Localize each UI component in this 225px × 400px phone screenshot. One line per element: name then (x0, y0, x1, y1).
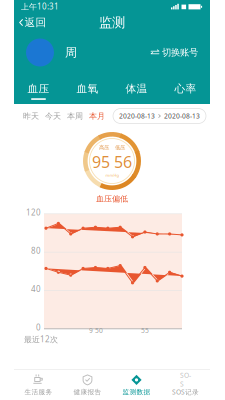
staticText: SOS (180, 371, 191, 388)
staticText: 监测 (99, 14, 125, 31)
staticText: 2020-08-13 (119, 112, 155, 120)
button[interactable]: 体温 (112, 77, 161, 100)
button[interactable]: 今天 (42, 107, 64, 125)
staticText: 体温 (125, 82, 147, 95)
staticText: mmHg (105, 172, 118, 178)
staticText: 高压 (99, 144, 109, 151)
staticText: 健康报告 (73, 388, 101, 396)
staticText: 昨天 (23, 111, 39, 121)
staticText: 周 (65, 45, 77, 60)
staticText: 监测数据 (122, 388, 150, 396)
staticText: 0 (36, 322, 41, 333)
button[interactable]: 返回 (14, 13, 52, 32)
staticText: 本月 (89, 111, 105, 121)
button[interactable]: SOS (161, 370, 210, 400)
staticText: SOS记录 (172, 388, 199, 396)
button[interactable]: 心率 (161, 77, 210, 100)
button[interactable]: 本月 (86, 107, 108, 125)
button[interactable]: 2020-08-13 (113, 109, 206, 123)
staticText: 2020-08-13 (164, 112, 200, 120)
staticText: 最近12次 (24, 334, 58, 344)
staticText: 血压 (27, 82, 49, 95)
staticText: 上午10:31 (21, 1, 59, 12)
button[interactable]: 切换账号 (149, 43, 200, 62)
button[interactable]: 本周 (64, 107, 86, 125)
staticText: 血氧 (76, 82, 98, 95)
button[interactable]: 监测数据 (112, 370, 161, 400)
staticText: 本周 (67, 111, 83, 121)
button[interactable]: 健康报告 (63, 370, 112, 400)
staticText: 生活服务 (24, 388, 52, 396)
staticText: 95 (92, 151, 110, 172)
staticText: 返回 (24, 16, 46, 29)
button[interactable]: 生活服务 (14, 370, 63, 400)
staticText: 血压偏低 (96, 194, 128, 204)
staticText: 低压 (115, 144, 125, 151)
button[interactable]: 血氧 (63, 77, 112, 100)
staticText: 55 (141, 326, 149, 335)
staticText: 80 (31, 245, 41, 256)
staticText: 心率 (174, 82, 196, 95)
staticText: 120 (26, 207, 41, 218)
staticText: 切换账号 (162, 47, 198, 58)
button[interactable]: 昨天 (20, 107, 42, 125)
button[interactable]: 血压 (14, 77, 63, 100)
staticText: 9 50 (89, 326, 103, 335)
staticText: 40 (31, 284, 41, 294)
staticText: 今天 (45, 111, 61, 121)
staticText: 56 (114, 151, 132, 172)
